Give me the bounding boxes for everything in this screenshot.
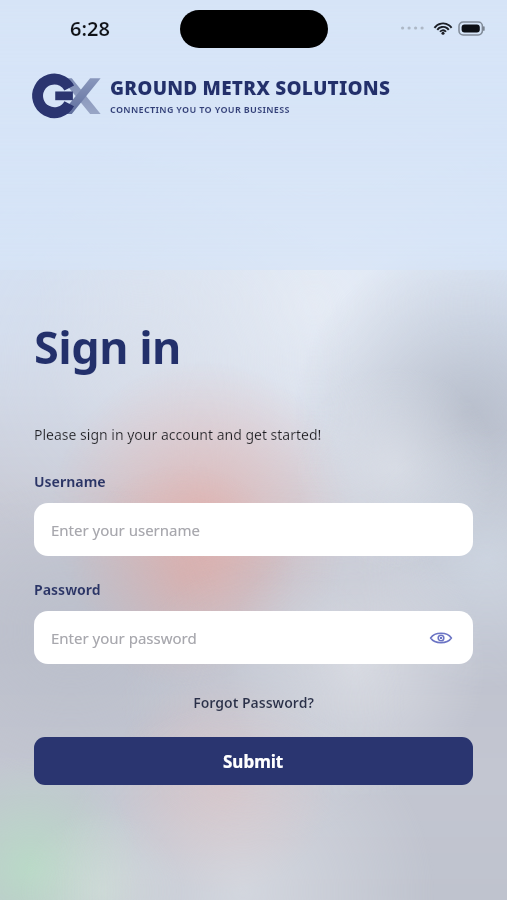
staticText: Password: [34, 580, 101, 599]
staticText: 6:28: [70, 15, 110, 42]
button[interactable]: Show password: [426, 623, 456, 653]
button[interactable]: Submit: [34, 737, 473, 785]
button[interactable]: Enter your password: [34, 611, 473, 664]
staticText: Enter your password: [51, 628, 197, 648]
staticText: CONNECTING YOU TO YOUR BUSINESS: [110, 103, 290, 115]
staticText: Submit: [223, 750, 284, 773]
staticText: GROUND METRX SOLUTIONS: [110, 75, 391, 101]
button[interactable]: Forgot Password?: [187, 690, 320, 715]
staticText: Enter your username: [51, 520, 200, 540]
staticText: Sign in: [34, 316, 181, 377]
staticText: Please sign in your account and get star…: [34, 425, 322, 444]
staticText: Username: [34, 472, 106, 491]
button[interactable]: Enter your username: [34, 503, 473, 556]
